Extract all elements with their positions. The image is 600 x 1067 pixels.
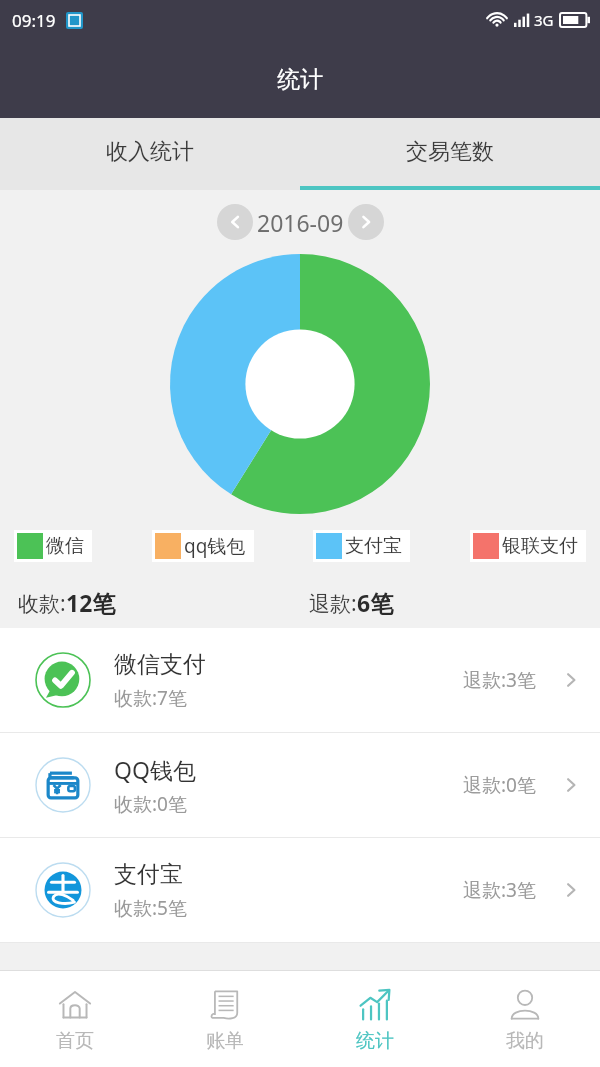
button[interactable]: QQ钱包 [0,733,600,837]
staticText: 6笔 [357,587,394,618]
button[interactable]: 支付宝 [0,838,600,942]
staticText: 收入统计 [106,138,194,166]
staticText: 统计 [356,1029,394,1053]
staticText: 首页 [56,1029,94,1053]
staticText: 退款:3笔 [463,667,536,693]
button[interactable]: 首页 [0,971,150,1067]
button[interactable]: 收入统计 [0,118,300,186]
staticText: 12笔 [66,587,116,618]
staticText: 退款: [309,589,357,618]
staticText: 收款: [18,589,66,618]
staticText: 支付宝 [345,534,402,558]
staticText: 交易笔数 [406,138,494,166]
staticText: QQ钱包 [114,754,196,785]
button[interactable]: Previous month [217,204,253,240]
staticText: 2016-09 [257,207,344,238]
button[interactable]: Next month [348,204,384,240]
staticText: 3G [534,10,554,30]
staticText: 银联支付 [502,534,578,558]
button[interactable]: 统计 [300,971,450,1067]
staticText: 退款:0笔 [463,772,536,798]
button[interactable]: 支付宝 [313,530,410,562]
staticText: 退款:3笔 [463,877,536,903]
button[interactable]: 微信 [14,530,92,562]
button[interactable]: 我的 [450,971,600,1067]
button[interactable]: 微信支付 [0,628,600,732]
staticText: qq钱包 [184,533,246,559]
button[interactable]: 交易笔数 [300,118,600,186]
staticText: 统计 [277,65,323,94]
staticText: 支付宝 [114,860,183,889]
button[interactable]: qq钱包 [152,530,254,562]
staticText: 收款:0笔 [114,791,187,817]
button[interactable]: 账单 [150,971,300,1067]
staticText: 账单 [206,1029,244,1053]
staticText: 收款:5笔 [114,895,187,921]
staticText: 收款:7笔 [114,685,187,711]
staticText: 09:19 [12,9,56,32]
button[interactable]: 银联支付 [470,530,586,562]
staticText: 微信 [46,534,84,558]
staticText: 微信支付 [114,650,206,679]
staticText: 我的 [506,1029,544,1053]
